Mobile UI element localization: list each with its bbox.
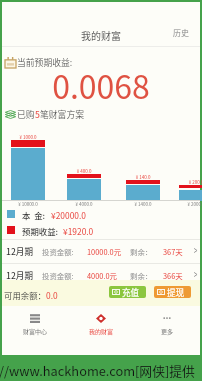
staticText: //www.hackhome.com[网侠]提供 [0, 361, 195, 380]
staticText: 0.0 [46, 289, 58, 301]
button[interactable]: 充值 [109, 286, 146, 298]
button[interactable]: 历史 [167, 22, 195, 44]
staticText: 当前预期收益: [17, 56, 73, 69]
staticText: 5 [35, 108, 40, 121]
button[interactable]: 12月期 [2, 264, 200, 287]
staticText: ¥ 1000.0 [11, 134, 45, 141]
staticText: 笔财富方案 [40, 108, 84, 121]
staticText: 预期收益: [22, 225, 59, 237]
staticText: ¥ 200.0 [179, 179, 202, 186]
staticText: 10000.0元 [87, 246, 122, 257]
staticText: ¥ 400.0 [67, 168, 101, 175]
staticText: 已购 [17, 108, 35, 121]
staticText: 提现 [167, 286, 185, 298]
button[interactable]: 提现 [154, 286, 191, 298]
other: Open plan details [192, 247, 199, 254]
staticText: 本 金: [22, 209, 46, 221]
staticText: ¥ 10000.0 [11, 201, 45, 208]
button[interactable]: 财富中心 [2, 308, 68, 342]
staticText: 可用余额： [4, 289, 46, 301]
staticText: 历史 [173, 27, 189, 39]
staticText: 12月期 [6, 269, 33, 281]
staticText: 投资金额: [42, 246, 74, 257]
other: Open plan details [192, 271, 199, 278]
staticText: ¥ 1400.0 [126, 201, 160, 208]
staticText: ¥ 140.0 [126, 174, 160, 181]
staticText: 我的财富 [89, 327, 114, 336]
staticText: 财富中心 [23, 327, 48, 336]
staticText: ¥ 4000.0 [67, 201, 101, 208]
staticText: 充值 [122, 286, 140, 298]
staticText: ¥20000.0 [51, 209, 86, 221]
button[interactable]: 我的财富 [68, 308, 134, 342]
staticText: 更多 [161, 327, 174, 336]
staticText: 366天 [163, 270, 183, 281]
staticText: ¥1920.0 [63, 225, 94, 237]
button[interactable]: 更多 [134, 308, 200, 342]
staticText: 剩余： [130, 246, 153, 257]
staticText: 投资金额: [42, 270, 74, 281]
staticText: ¥ 2000.0 [179, 201, 202, 208]
staticText: 剩余： [130, 270, 153, 281]
button[interactable]: 12月期 [2, 240, 200, 263]
staticText: 我的财富 [81, 28, 121, 42]
staticText: 12月期 [6, 245, 33, 257]
staticText: 367天 [163, 246, 183, 257]
staticText: 0.0068 [2, 62, 200, 108]
staticText: 4000.0元 [87, 270, 117, 281]
